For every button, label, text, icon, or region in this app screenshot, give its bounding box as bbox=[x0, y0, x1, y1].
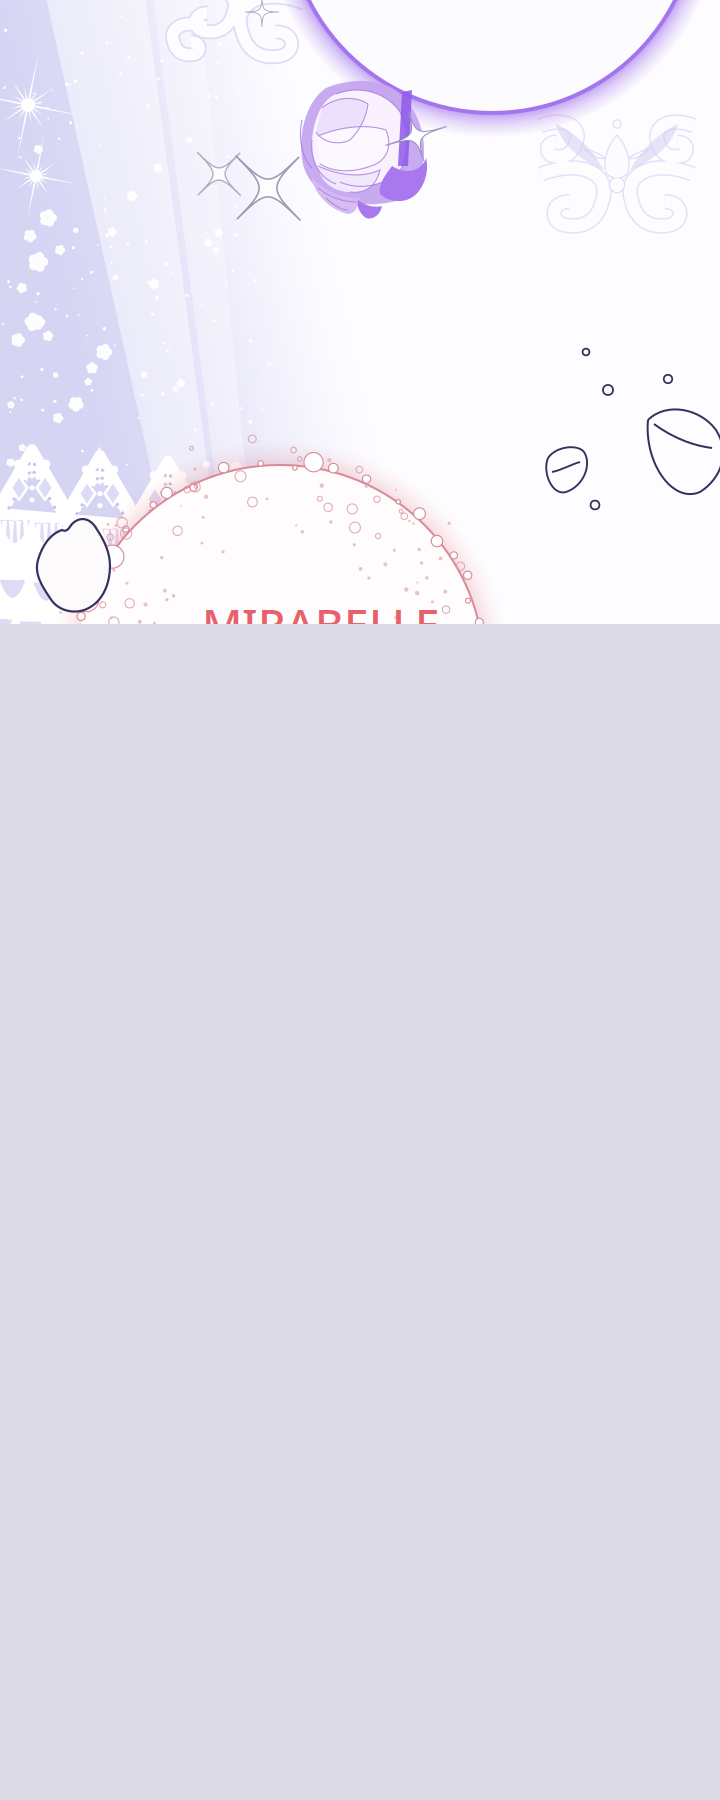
staticText: MIRABELLE bbox=[202, 595, 440, 653]
